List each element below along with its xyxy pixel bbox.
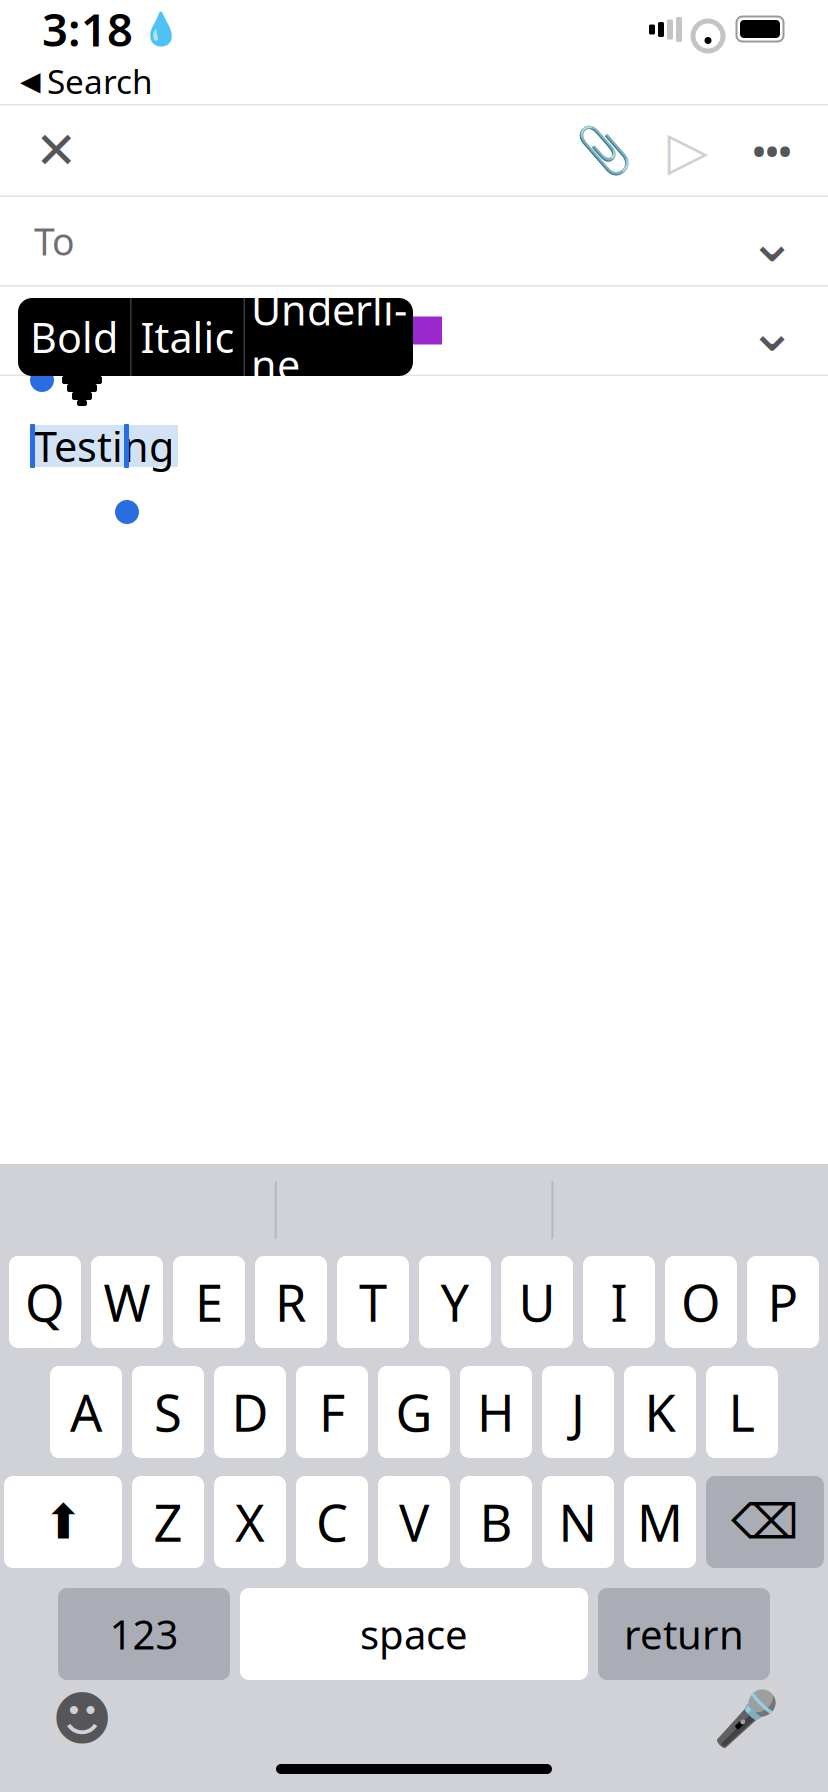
staticText: N (558, 1488, 597, 1556)
staticText: V (399, 1488, 429, 1556)
button[interactable]: From (0, 286, 828, 374)
button[interactable]: 123 (58, 1588, 230, 1680)
button[interactable]: B (460, 1476, 532, 1568)
button[interactable]: R (255, 1256, 327, 1348)
button[interactable]: L (706, 1366, 778, 1458)
staticText: J (571, 1378, 585, 1446)
button[interactable]: X (214, 1476, 286, 1568)
staticText: Z (153, 1488, 182, 1556)
button[interactable]: Q (9, 1256, 81, 1348)
button[interactable]: K (624, 1366, 696, 1458)
button[interactable]: Underline (245, 298, 413, 376)
staticText: M (637, 1488, 683, 1556)
staticText: ✕ (35, 122, 77, 179)
button[interactable]: P (747, 1256, 819, 1348)
button[interactable]: D (214, 1366, 286, 1458)
button[interactable]: E (173, 1256, 245, 1348)
button[interactable]: Y (419, 1256, 491, 1348)
button[interactable]: J (542, 1366, 614, 1458)
staticText: ⌄ (747, 297, 796, 364)
staticText: E (195, 1268, 223, 1336)
button[interactable]: To (0, 197, 828, 285)
button[interactable]: N (542, 1476, 614, 1568)
button[interactable]: I (583, 1256, 655, 1348)
staticText: 💧 (141, 11, 181, 47)
staticText: W (103, 1268, 150, 1336)
button[interactable]: Send (646, 108, 730, 192)
staticText: From (34, 306, 126, 355)
staticText: Underline (251, 282, 407, 392)
button[interactable]: T (337, 1256, 409, 1348)
button[interactable]: Close (14, 108, 98, 192)
button[interactable]: A (50, 1366, 122, 1458)
staticText: T (359, 1268, 387, 1336)
button[interactable]: More options (730, 108, 814, 192)
staticText: return (624, 1607, 744, 1660)
staticText: Y (440, 1268, 469, 1336)
staticText: ⌫ (731, 1495, 799, 1549)
staticText: ••• (752, 127, 791, 173)
button[interactable]: C (296, 1476, 368, 1568)
staticText: C (316, 1488, 348, 1556)
staticText: I (610, 1268, 627, 1336)
staticText: L (728, 1378, 755, 1446)
staticText: G (395, 1378, 432, 1446)
button[interactable]: F (296, 1366, 368, 1458)
staticText: 🎤 (713, 1688, 779, 1749)
staticText: D (231, 1378, 268, 1446)
staticText: Search (47, 59, 153, 103)
staticText: To (34, 216, 75, 266)
button[interactable]: Emoji keyboard (42, 1684, 122, 1754)
staticText: Testing (34, 419, 174, 473)
staticText: O (681, 1268, 721, 1336)
staticText: ▷ (667, 120, 708, 181)
staticText: ☻ (51, 1686, 112, 1752)
staticText: K (644, 1378, 675, 1446)
button[interactable]: Attach (562, 108, 646, 192)
button[interactable]: Italic (131, 298, 243, 376)
button[interactable]: W (91, 1256, 163, 1348)
staticText: space (360, 1607, 468, 1660)
staticText: 3:18 (42, 0, 133, 59)
staticText: Italic (140, 310, 234, 364)
button[interactable]: Dictation (706, 1684, 786, 1754)
button[interactable]: ◀ (0, 53, 173, 109)
button[interactable]: O (665, 1256, 737, 1348)
button[interactable]: ⬆ (4, 1476, 122, 1568)
button[interactable]: space (240, 1588, 588, 1680)
button[interactable]: S (132, 1366, 204, 1458)
button[interactable]: Z (132, 1476, 204, 1568)
staticText: Q (25, 1268, 65, 1336)
staticText: ⬆ (43, 1495, 83, 1549)
staticText: A (70, 1378, 102, 1446)
staticText: U (518, 1268, 555, 1336)
staticText: B (479, 1488, 512, 1556)
staticText: ⌄ (747, 208, 796, 274)
staticText: 📎 (576, 125, 632, 176)
staticText: X (235, 1488, 265, 1556)
staticText: R (275, 1268, 307, 1336)
button[interactable]: Bold (18, 298, 130, 376)
staticText: F (319, 1378, 345, 1446)
button[interactable]: V (378, 1476, 450, 1568)
button[interactable]: M (624, 1476, 696, 1568)
button[interactable]: ⌫ (706, 1476, 824, 1568)
button[interactable]: H (460, 1366, 532, 1458)
staticText: 123 (109, 1607, 178, 1660)
button[interactable]: U (501, 1256, 573, 1348)
staticText: H (477, 1378, 515, 1446)
staticText: Bold (30, 310, 118, 364)
staticText: ◀ (20, 66, 41, 96)
button[interactable]: return (598, 1588, 770, 1680)
staticText: P (767, 1268, 798, 1336)
staticText: S (154, 1378, 182, 1446)
button[interactable]: G (378, 1366, 450, 1458)
